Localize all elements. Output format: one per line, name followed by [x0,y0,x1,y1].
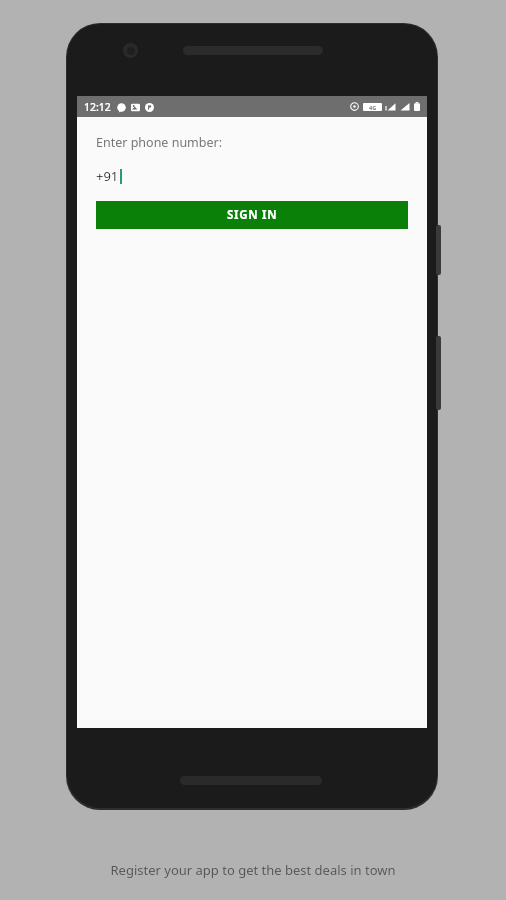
staticText: 12:12 [84,100,111,114]
staticText: Enter phone number: [96,134,223,151]
other: Power button [436,225,441,275]
staticText: SIGN IN [227,207,278,223]
button[interactable]: +91 [77,165,427,187]
staticText: Register your app to get the best deals … [0,861,506,879]
staticText: +91 [96,167,119,185]
button[interactable]: SIGN IN [96,201,408,229]
other: Volume button [436,336,441,410]
staticText: 4G [369,104,377,111]
